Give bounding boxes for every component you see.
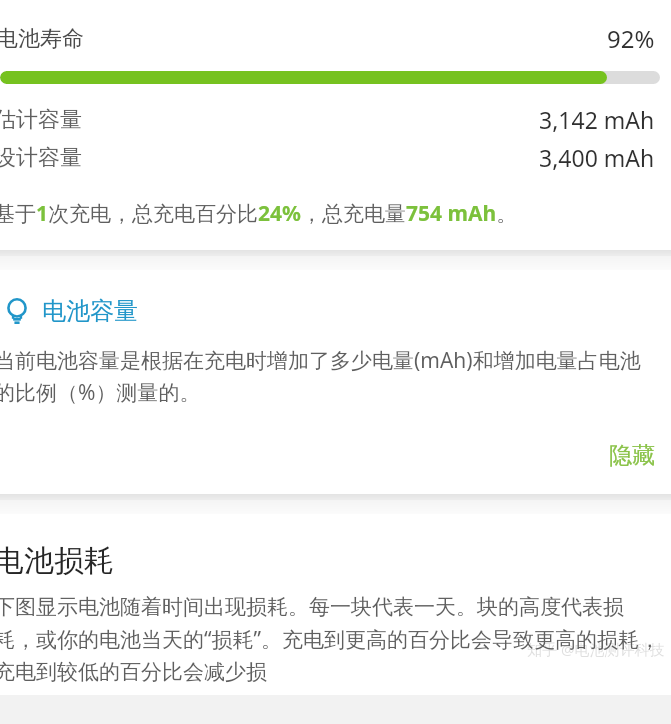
- staticText: 3,142 mAh: [539, 104, 655, 135]
- staticText: 估计容量: [0, 106, 82, 134]
- button[interactable]: 设计容量: [0, 142, 671, 173]
- staticText: 下图显示电池随着时间出现损耗。每一块代表一天。块的高度代表损耗，或你的电池当天的…: [0, 594, 661, 685]
- staticText: 电池容量: [42, 296, 138, 326]
- button[interactable]: 隐藏: [593, 435, 671, 476]
- button[interactable]: 估计容量: [0, 104, 671, 135]
- button[interactable]: 电池寿命: [0, 22, 671, 55]
- staticText: 基于1次充电，总充电百分比24%，总充电量754 mAh。: [0, 199, 518, 228]
- staticText: 电池损耗: [0, 542, 114, 580]
- staticText: 92%: [607, 22, 655, 55]
- other: Tip: [4, 298, 30, 324]
- staticText: 设计容量: [0, 144, 82, 172]
- staticText: 知乎 @电池测评科技: [527, 639, 665, 659]
- staticText: 当前电池容量是根据在充电时增加了多少电量(mAh)和增加电量占电池的比例（%）测…: [0, 346, 657, 407]
- staticText: 电池寿命: [0, 25, 84, 53]
- staticText: 3,400 mAh: [539, 142, 655, 173]
- staticText: 隐藏: [609, 441, 655, 470]
